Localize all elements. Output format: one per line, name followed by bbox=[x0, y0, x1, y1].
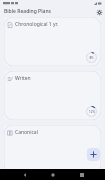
staticText: Bible Reading Plans bbox=[4, 8, 51, 15]
staticText: 8% bbox=[89, 56, 94, 60]
button[interactable]: Home bbox=[48, 170, 57, 179]
button[interactable]: Settings bbox=[95, 8, 103, 16]
staticText: Writen bbox=[15, 75, 31, 82]
button[interactable]: Recent apps bbox=[77, 170, 86, 179]
staticText: Canonical bbox=[15, 129, 38, 136]
button[interactable]: Add reading plan bbox=[87, 148, 100, 161]
staticText: Chronological 1 yr. bbox=[15, 21, 59, 28]
staticText: 12% bbox=[89, 110, 95, 114]
button[interactable]: Canonical bbox=[4, 125, 101, 174]
button[interactable]: Chronological 1 yr. bbox=[4, 17, 101, 66]
button[interactable]: Writen bbox=[4, 71, 101, 120]
button[interactable]: Back bbox=[20, 170, 29, 179]
